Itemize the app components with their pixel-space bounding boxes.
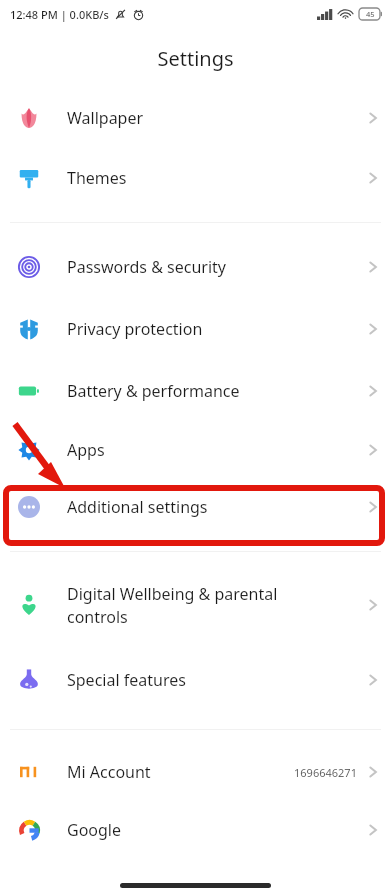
button[interactable]: Wallpaper xyxy=(0,88,391,148)
staticText: 1696646271 xyxy=(294,765,357,780)
staticText: Mi Account xyxy=(67,761,294,783)
staticText: Additional settings xyxy=(67,496,367,518)
staticText: 12:48 PM | 0.0KB/s xyxy=(10,7,109,22)
button[interactable]: Special features xyxy=(0,645,391,715)
button[interactable]: Additional settings xyxy=(0,477,391,537)
staticText: Themes xyxy=(67,167,367,189)
staticText: Settings xyxy=(157,45,234,72)
staticText: Google xyxy=(67,819,367,841)
staticText: Wallpaper xyxy=(67,107,367,129)
button[interactable]: Apps xyxy=(0,422,391,477)
button[interactable]: Mi Account xyxy=(0,743,391,801)
button[interactable]: Google xyxy=(0,801,391,859)
staticText: Privacy protection xyxy=(67,318,367,340)
staticText: Battery & performance xyxy=(67,380,367,402)
staticText: Passwords & security xyxy=(67,256,367,278)
staticText: 45 xyxy=(366,9,375,19)
staticText: Apps xyxy=(67,439,367,461)
button[interactable]: Digital Wellbeing & parental controls xyxy=(0,565,391,645)
button[interactable]: Privacy protection xyxy=(0,298,391,360)
button[interactable]: Themes xyxy=(0,148,391,208)
staticText: Digital Wellbeing & parental controls xyxy=(67,583,367,628)
button[interactable]: Passwords & security xyxy=(0,236,391,298)
staticText: Special features xyxy=(67,669,367,691)
button[interactable]: Battery & performance xyxy=(0,360,391,422)
